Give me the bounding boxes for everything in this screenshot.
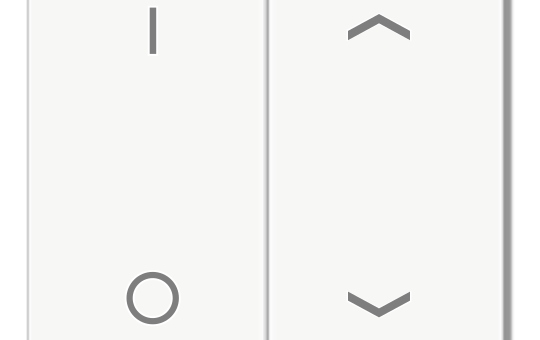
button[interactable]: Turn light off (26, 170, 264, 340)
button[interactable]: Turn light on (26, 0, 264, 170)
button[interactable]: Lower blind (270, 170, 509, 340)
button[interactable]: Raise blind (270, 0, 509, 170)
